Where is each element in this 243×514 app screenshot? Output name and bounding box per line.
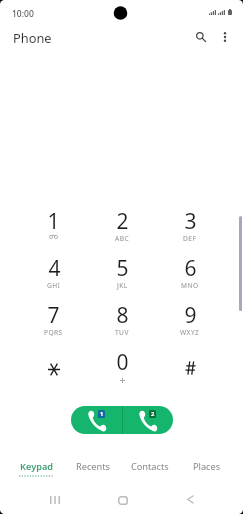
- button[interactable]: Search: [187, 23, 214, 50]
- button[interactable]: Recents: [64, 454, 121, 480]
- staticText: GHI: [47, 281, 61, 290]
- button[interactable]: 9: [156, 301, 224, 348]
- button[interactable]: Keypad: [8, 454, 64, 480]
- button[interactable]: Home: [106, 486, 140, 514]
- staticText: 4: [48, 254, 61, 283]
- button[interactable]: Back: [173, 486, 207, 514]
- staticText: PQRS: [44, 328, 63, 337]
- staticText: MNO: [181, 281, 199, 290]
- button[interactable]: 4: [19, 254, 88, 301]
- button[interactable]: 2: [88, 207, 156, 254]
- staticText: 5: [116, 254, 129, 283]
- button[interactable]: [19, 348, 88, 395]
- staticText: WXYZ: [180, 328, 200, 337]
- staticText: 6: [184, 254, 197, 283]
- button[interactable]: 1: [19, 207, 88, 254]
- button[interactable]: More options: [211, 23, 238, 50]
- button[interactable]: Call with SIM 2: [123, 406, 173, 434]
- staticText: 1: [100, 410, 104, 418]
- staticText: DEF: [183, 234, 197, 243]
- staticText: Phone: [13, 29, 52, 46]
- staticText: 0: [116, 348, 129, 377]
- button[interactable]: 8: [88, 301, 156, 348]
- staticText: Contacts: [131, 460, 169, 473]
- button[interactable]: Places: [178, 454, 235, 480]
- staticText: 10:00: [12, 8, 34, 20]
- staticText: Recents: [76, 460, 110, 473]
- staticText: ABC: [115, 234, 130, 243]
- button[interactable]: Call with SIM 1: [71, 406, 122, 434]
- staticText: TUV: [115, 328, 129, 337]
- button[interactable]: 5: [88, 254, 156, 301]
- staticText: 9: [184, 301, 197, 330]
- staticText: 8: [116, 301, 129, 330]
- button[interactable]: 0: [88, 348, 156, 395]
- staticText: 3: [184, 207, 197, 236]
- button[interactable]: Contacts: [121, 454, 178, 480]
- button[interactable]: 6: [156, 254, 224, 301]
- staticText: Keypad: [20, 460, 54, 473]
- button[interactable]: 3: [156, 207, 224, 254]
- staticText: 7: [47, 301, 60, 330]
- staticText: JKL: [117, 281, 128, 290]
- button[interactable]: [156, 348, 224, 395]
- button[interactable]: 7: [19, 301, 88, 348]
- button[interactable]: Recents: [38, 486, 72, 514]
- staticText: Places: [193, 460, 221, 473]
- staticText: 2: [151, 410, 155, 418]
- staticText: 2: [116, 207, 129, 236]
- staticText: 1: [47, 207, 60, 236]
